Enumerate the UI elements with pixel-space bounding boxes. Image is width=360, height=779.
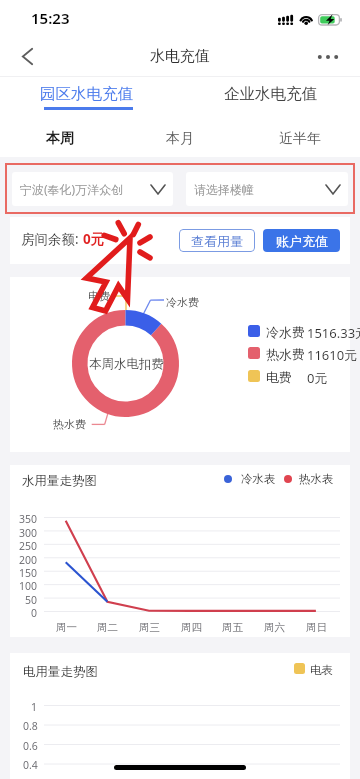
button[interactable]: More options (318, 36, 360, 77)
staticText: 近半年 (279, 130, 321, 148)
staticText: 热水表 (299, 472, 334, 486)
staticText: 100 (19, 579, 38, 593)
staticText: 350 (19, 512, 38, 526)
staticText: 请选择楼幢 (194, 182, 326, 197)
staticText: 0元 (83, 230, 105, 248)
button[interactable]: 请选择楼幢 (186, 172, 348, 206)
staticText: 150 (19, 566, 38, 580)
staticText: 房间余额: (21, 230, 83, 248)
staticText: 1516.33元 (307, 324, 360, 342)
staticText: 电费 (266, 369, 292, 385)
staticText: 200 (19, 553, 38, 567)
button[interactable]: 近半年 (240, 115, 360, 160)
staticText: 企业水电充值 (224, 84, 317, 104)
staticText: 周一 (56, 621, 77, 634)
staticText: 冷水表 (241, 472, 276, 486)
staticText: 本月 (166, 130, 194, 148)
staticText: 50 (25, 593, 38, 607)
staticText: 周五 (222, 621, 243, 634)
staticText: 热水费 (53, 417, 86, 431)
staticText: 0 (31, 606, 38, 620)
staticText: 15:23 (31, 8, 70, 28)
staticText: 周四 (181, 621, 202, 634)
staticText: 水电充值 (150, 47, 210, 66)
staticText: 300 (19, 526, 38, 540)
staticText: 周六 (264, 621, 285, 634)
staticText: 1 (31, 700, 38, 714)
staticText: 11610元 (307, 346, 358, 364)
staticText: 电用量走势图 (23, 664, 98, 680)
staticText: 水用量走势图 (22, 473, 97, 489)
staticText: 本周 (46, 130, 74, 148)
button[interactable]: 本月 (120, 115, 240, 160)
staticText: 0.4 (23, 758, 38, 772)
staticText: 周二 (97, 621, 118, 634)
staticText: 周三 (139, 621, 160, 634)
button[interactable]: 本周 (0, 115, 120, 160)
staticText: 账户充值 (276, 233, 328, 249)
button[interactable]: 企业水电充值 (180, 77, 360, 112)
staticText: 0.6 (23, 739, 38, 753)
button[interactable]: 园区水电充值 (0, 77, 180, 112)
staticText: 查看用量 (191, 233, 243, 249)
staticText: 电费 (88, 289, 110, 303)
staticText: 0.8 (23, 719, 38, 733)
staticText: 园区水电充值 (40, 84, 133, 104)
staticText: 本周水电扣费 (89, 356, 164, 372)
staticText: 热水费 (266, 346, 305, 362)
staticText: 冷水费 (266, 324, 305, 340)
button[interactable]: 宁波(奉化)万洋众创 (12, 172, 173, 206)
button[interactable]: 查看用量 (179, 229, 255, 252)
button[interactable]: 账户充值 (263, 229, 340, 252)
staticText: 周日 (306, 621, 327, 634)
staticText: 冷水费 (166, 295, 199, 309)
staticText: 电表 (310, 663, 333, 677)
staticText: 0元 (307, 369, 328, 387)
staticText: 宁波(奉化)万洋众创 (20, 181, 151, 197)
staticText: 250 (19, 539, 38, 553)
button[interactable]: Back (6, 36, 48, 77)
